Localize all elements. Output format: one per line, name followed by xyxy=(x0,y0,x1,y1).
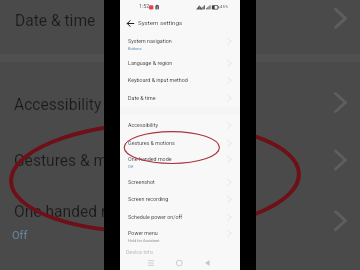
staticText: One handed mode xyxy=(14,203,141,221)
button[interactable]: Keyboard & input method xyxy=(120,72,240,90)
button[interactable]: Back xyxy=(126,19,135,28)
button[interactable]: Power menu xyxy=(120,225,240,243)
button[interactable]: Screen recording xyxy=(120,191,240,209)
button[interactable]: Date & time xyxy=(120,90,240,108)
staticText: One-handed mode xyxy=(128,156,172,162)
button[interactable]: Accessibility xyxy=(120,117,240,135)
button[interactable]: Screenshot xyxy=(120,174,240,192)
staticText: System settings xyxy=(138,19,183,26)
button[interactable]: System navigation xyxy=(120,33,240,51)
staticText: System navigation xyxy=(128,38,172,44)
staticText: Language & region xyxy=(128,60,173,66)
staticText: Device info xyxy=(126,250,153,254)
staticText: Accessibility xyxy=(128,122,158,128)
button[interactable]: Gestures & motions xyxy=(120,135,240,153)
staticText: Gestures & motions xyxy=(128,140,175,146)
staticText: Buttons xyxy=(128,46,142,51)
staticText: Date & time xyxy=(15,12,96,30)
staticText: Date & time xyxy=(128,95,156,101)
staticText: Keyboard & input method xyxy=(128,77,188,83)
staticText: 1:52 xyxy=(139,3,150,9)
staticText: Accessibility xyxy=(14,96,102,114)
staticText: Off xyxy=(12,229,28,242)
staticText: Screenshot xyxy=(128,179,155,185)
staticText: 45% xyxy=(220,4,229,9)
staticText: Gestures & motions xyxy=(14,152,151,170)
button[interactable]: One-handed mode xyxy=(120,151,240,169)
button[interactable]: Schedule power on/off xyxy=(120,209,240,227)
staticText: Screen recording xyxy=(128,196,169,202)
staticText: Schedule power on/off xyxy=(128,214,183,220)
button[interactable]: Language & region xyxy=(120,55,240,73)
staticText: Power menu xyxy=(128,230,158,236)
staticText: Hold for Assistant xyxy=(128,238,160,243)
staticText: Off xyxy=(128,164,134,169)
